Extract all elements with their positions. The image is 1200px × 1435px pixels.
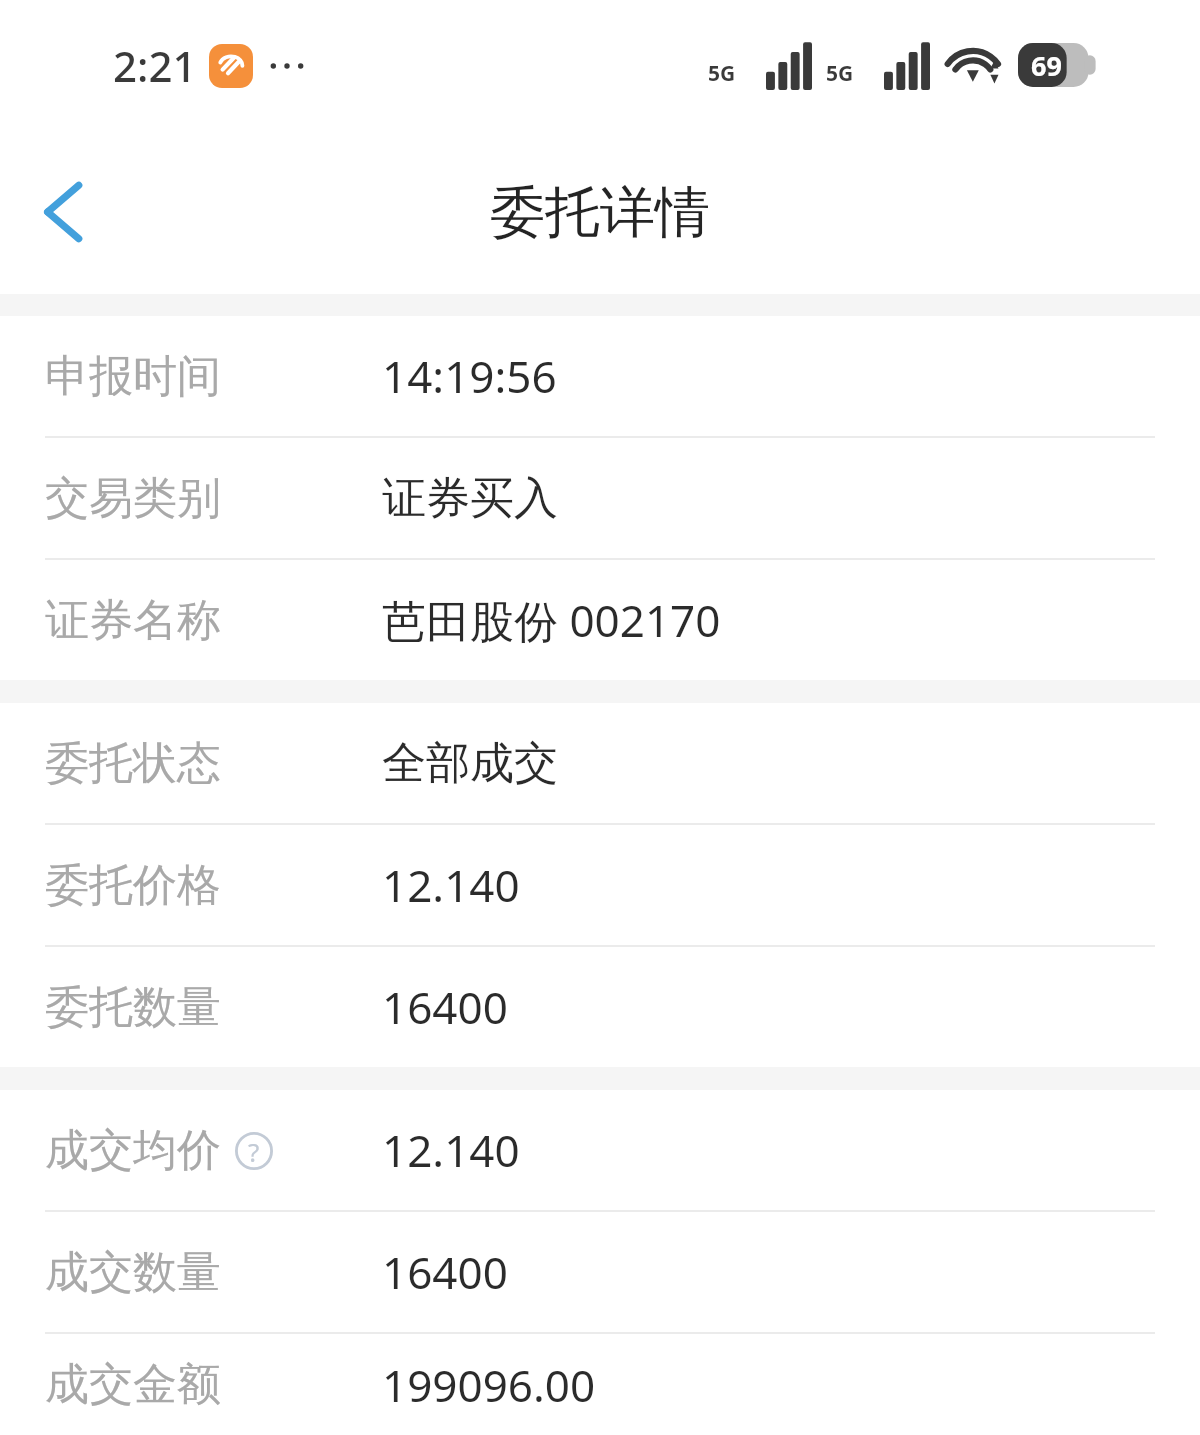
staticText: 申报时间 <box>45 349 221 404</box>
button[interactable]: 交易类别 <box>0 438 1200 558</box>
staticText: 5G <box>826 59 854 88</box>
staticText: 委托数量 <box>45 980 221 1035</box>
staticText: 成交金额 <box>45 1357 221 1412</box>
button[interactable]: 成交数量 <box>0 1212 1200 1332</box>
staticText: 14:19:56 <box>382 346 557 406</box>
staticText: 5G <box>708 59 736 88</box>
staticText: 全部成交 <box>382 736 558 791</box>
staticText: 199096.00 <box>382 1355 596 1415</box>
button[interactable]: 成交均价 <box>0 1090 1200 1210</box>
button[interactable]: 申报时间 <box>0 316 1200 436</box>
staticText: 69 <box>1031 47 1062 84</box>
staticText: 成交数量 <box>45 1245 221 1300</box>
staticText: 证券名称 <box>45 593 221 648</box>
staticText: 成交均价 <box>45 1123 221 1178</box>
staticText: 12.140 <box>382 1120 520 1180</box>
staticText: 委托详情 <box>490 178 710 247</box>
button[interactable]: 委托数量 <box>0 947 1200 1067</box>
staticText: 委托价格 <box>45 858 221 913</box>
staticText: 2:21 <box>113 37 197 94</box>
staticText: 12.140 <box>382 855 520 915</box>
button[interactable]: 成交金额 <box>0 1334 1200 1435</box>
button[interactable]: Back <box>14 164 110 260</box>
staticText: ? <box>248 1134 260 1169</box>
button[interactable]: 委托价格 <box>0 825 1200 945</box>
button[interactable]: 委托状态 <box>0 703 1200 823</box>
button[interactable]: Help about average price <box>233 1130 275 1172</box>
staticText: 交易类别 <box>45 471 221 526</box>
staticText: 委托状态 <box>45 736 221 791</box>
staticText: 芭田股份 002170 <box>382 590 721 650</box>
staticText: 证券买入 <box>382 471 558 526</box>
staticText: 16400 <box>382 977 508 1037</box>
button[interactable]: 证券名称 <box>0 560 1200 680</box>
staticText: 16400 <box>382 1242 508 1302</box>
